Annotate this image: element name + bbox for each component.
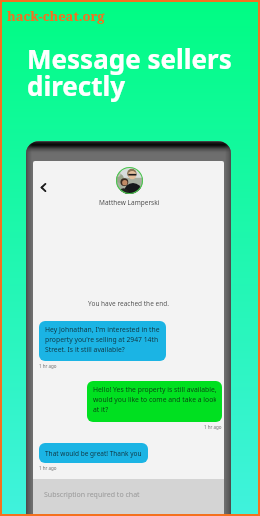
button[interactable]: That would be great! Thank you: [39, 443, 148, 463]
button[interactable]: Subscription required to chat: [33, 479, 224, 516]
staticText: 1 hr ago: [39, 465, 57, 471]
staticText: Hey Johnathan, I'm interested in the pro…: [45, 325, 160, 354]
staticText: Subscription required to chat: [44, 490, 140, 500]
staticText: 1 hr ago: [39, 363, 57, 369]
staticText: 1 hr ago: [204, 424, 222, 430]
staticText: That would be great! Thank you: [45, 449, 142, 458]
button[interactable]: Back: [35, 177, 51, 193]
staticText: hack-cheat.org: [7, 7, 105, 25]
staticText: Hello! Yes the property is still availab…: [93, 385, 216, 414]
button[interactable]: Hey Johnathan, I'm interested in the pro…: [39, 321, 166, 361]
staticText: Matthew Lamperski: [99, 198, 160, 207]
staticText: Message sellers directly: [27, 41, 232, 104]
staticText: You have reached the end.: [33, 299, 224, 308]
button[interactable]: Hello! Yes the property is still availab…: [87, 381, 222, 422]
